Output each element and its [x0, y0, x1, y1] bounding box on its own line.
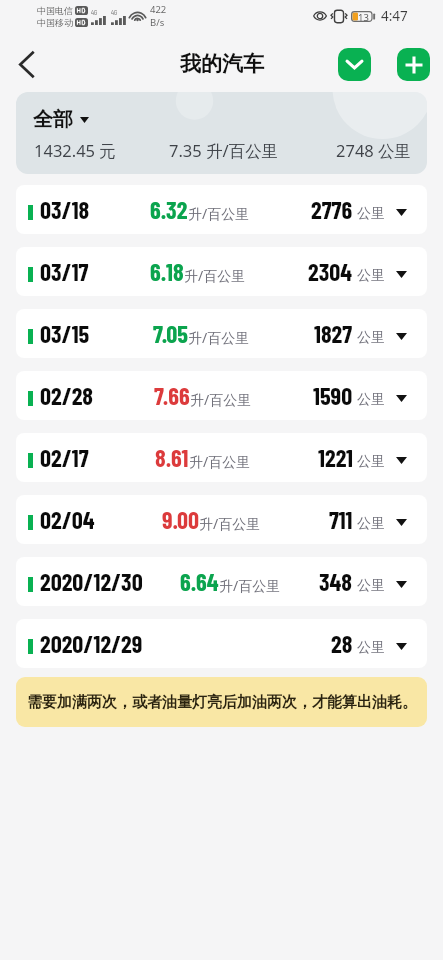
staticText: 6.18 [150, 257, 184, 286]
staticText: 1590 [313, 381, 353, 410]
staticText: 升/百公里 [188, 328, 250, 347]
staticText: 公里 [357, 329, 385, 347]
staticText: 13 [358, 11, 369, 22]
button[interactable]: 03/15 [16, 309, 427, 358]
staticText: 公里 [357, 205, 385, 223]
staticText: 4G [91, 8, 98, 16]
staticText: 我的汽车 [180, 51, 264, 77]
staticText: 03/18 [40, 195, 90, 224]
button[interactable]: 03/17 [16, 247, 427, 296]
button[interactable]: 全部 [33, 107, 89, 132]
staticText: 升/百公里 [219, 576, 281, 595]
staticText: 7.35 升/百公里 [169, 139, 279, 162]
staticText: 2304 [308, 257, 353, 286]
staticText: 升/百公里 [189, 452, 251, 471]
staticText: 1221 [318, 443, 353, 472]
staticText: 升/百公里 [190, 390, 252, 409]
button[interactable]: 02/17 [16, 433, 427, 482]
staticText: 422 [150, 3, 167, 16]
staticText: 2776 [311, 195, 353, 224]
staticText: 升/百公里 [184, 266, 246, 285]
staticText: 公里 [357, 453, 385, 471]
staticText: 公里 [357, 391, 385, 409]
staticText: 6.64 [180, 567, 219, 596]
staticText: 02/04 [40, 505, 95, 534]
staticText: 升/百公里 [199, 514, 261, 533]
staticText: 6.32 [150, 195, 188, 224]
staticText: 1432.45 元 [34, 139, 116, 162]
staticText: 公里 [357, 515, 385, 533]
button[interactable]: 02/28 [16, 371, 427, 420]
staticText: 中国电信 [37, 5, 73, 16]
staticText: 公里 [357, 267, 385, 285]
button[interactable]: 03/18 [16, 185, 427, 234]
button[interactable]: Filter [338, 48, 371, 81]
staticText: 03/15 [40, 319, 90, 348]
staticText: 4G [111, 8, 118, 16]
staticText: 02/17 [40, 443, 89, 472]
staticText: 8.61 [155, 443, 189, 472]
button[interactable]: 2020/12/29 [16, 619, 427, 668]
staticText: 全部 [33, 107, 73, 132]
staticText: 2020/12/29 [40, 629, 143, 658]
button[interactable]: Back [7, 44, 47, 84]
staticText: 2020/12/30 [40, 567, 143, 596]
staticText: 9.00 [162, 505, 199, 534]
staticText: 公里 [357, 639, 385, 657]
staticText: 升/百公里 [188, 204, 250, 223]
staticText: 02/28 [40, 381, 94, 410]
staticText: 公里 [357, 577, 385, 595]
staticText: 中国移动 [37, 17, 73, 28]
staticText: 7.66 [154, 381, 190, 410]
staticText: 1827 [314, 319, 353, 348]
staticText: 711 [329, 505, 353, 534]
staticText: 4:47 [381, 7, 408, 25]
button[interactable]: Add [397, 48, 430, 81]
button[interactable]: 02/04 [16, 495, 427, 544]
staticText: 348 [319, 567, 353, 596]
staticText: 03/17 [40, 257, 89, 286]
button[interactable]: 2020/12/30 [16, 557, 427, 606]
staticText: B/s [150, 16, 165, 29]
staticText: 7.05 [153, 319, 188, 348]
staticText: 需要加满两次，或者油量灯亮后加油两次，才能算出油耗。 [27, 693, 417, 712]
staticText: 2748 公里 [336, 139, 412, 162]
staticText: 28 [331, 629, 353, 658]
